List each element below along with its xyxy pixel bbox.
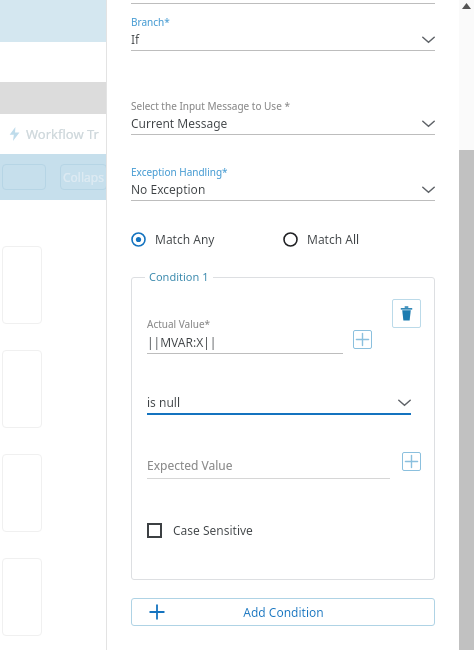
button[interactable]: Expected Value <box>147 457 390 479</box>
staticText: Branch* <box>131 15 170 29</box>
staticText: is null <box>147 394 398 410</box>
button[interactable]: Add Condition <box>131 598 435 626</box>
staticText: Select the Input Message to Use * <box>131 99 290 113</box>
button[interactable]: Match Any <box>131 231 215 247</box>
staticText: Actual Value* <box>147 317 211 331</box>
button[interactable]: Exception Handling* <box>131 165 435 201</box>
staticText: Match Any <box>155 231 215 247</box>
staticText: Exception Handling* <box>131 165 228 179</box>
staticText: Collaps <box>63 169 104 185</box>
staticText: Match All <box>307 231 360 247</box>
staticText: Add Condition <box>243 604 324 620</box>
staticText: If <box>131 31 422 47</box>
button[interactable]: Actual Value* <box>147 293 343 354</box>
staticText: No Exception <box>131 181 422 197</box>
button[interactable]: is null <box>147 391 411 415</box>
staticText: ||MVAR:X|| <box>147 334 217 350</box>
button[interactable]: Match All <box>283 231 360 247</box>
button[interactable]: Branch* <box>131 15 435 51</box>
button[interactable]: Select the Input Message to Use * <box>131 99 435 135</box>
staticText: Condition 1 <box>149 269 209 284</box>
staticText: Expected Value <box>147 457 233 473</box>
staticText: Current Message <box>131 115 422 131</box>
button[interactable]: Add actual value <box>353 330 372 349</box>
staticText: Workflow Tr <box>26 125 99 143</box>
button[interactable]: Case Sensitive <box>147 522 253 538</box>
button[interactable]: Add expected value <box>402 452 421 471</box>
button[interactable]: Delete condition <box>392 299 421 328</box>
staticText: Case Sensitive <box>173 522 253 538</box>
